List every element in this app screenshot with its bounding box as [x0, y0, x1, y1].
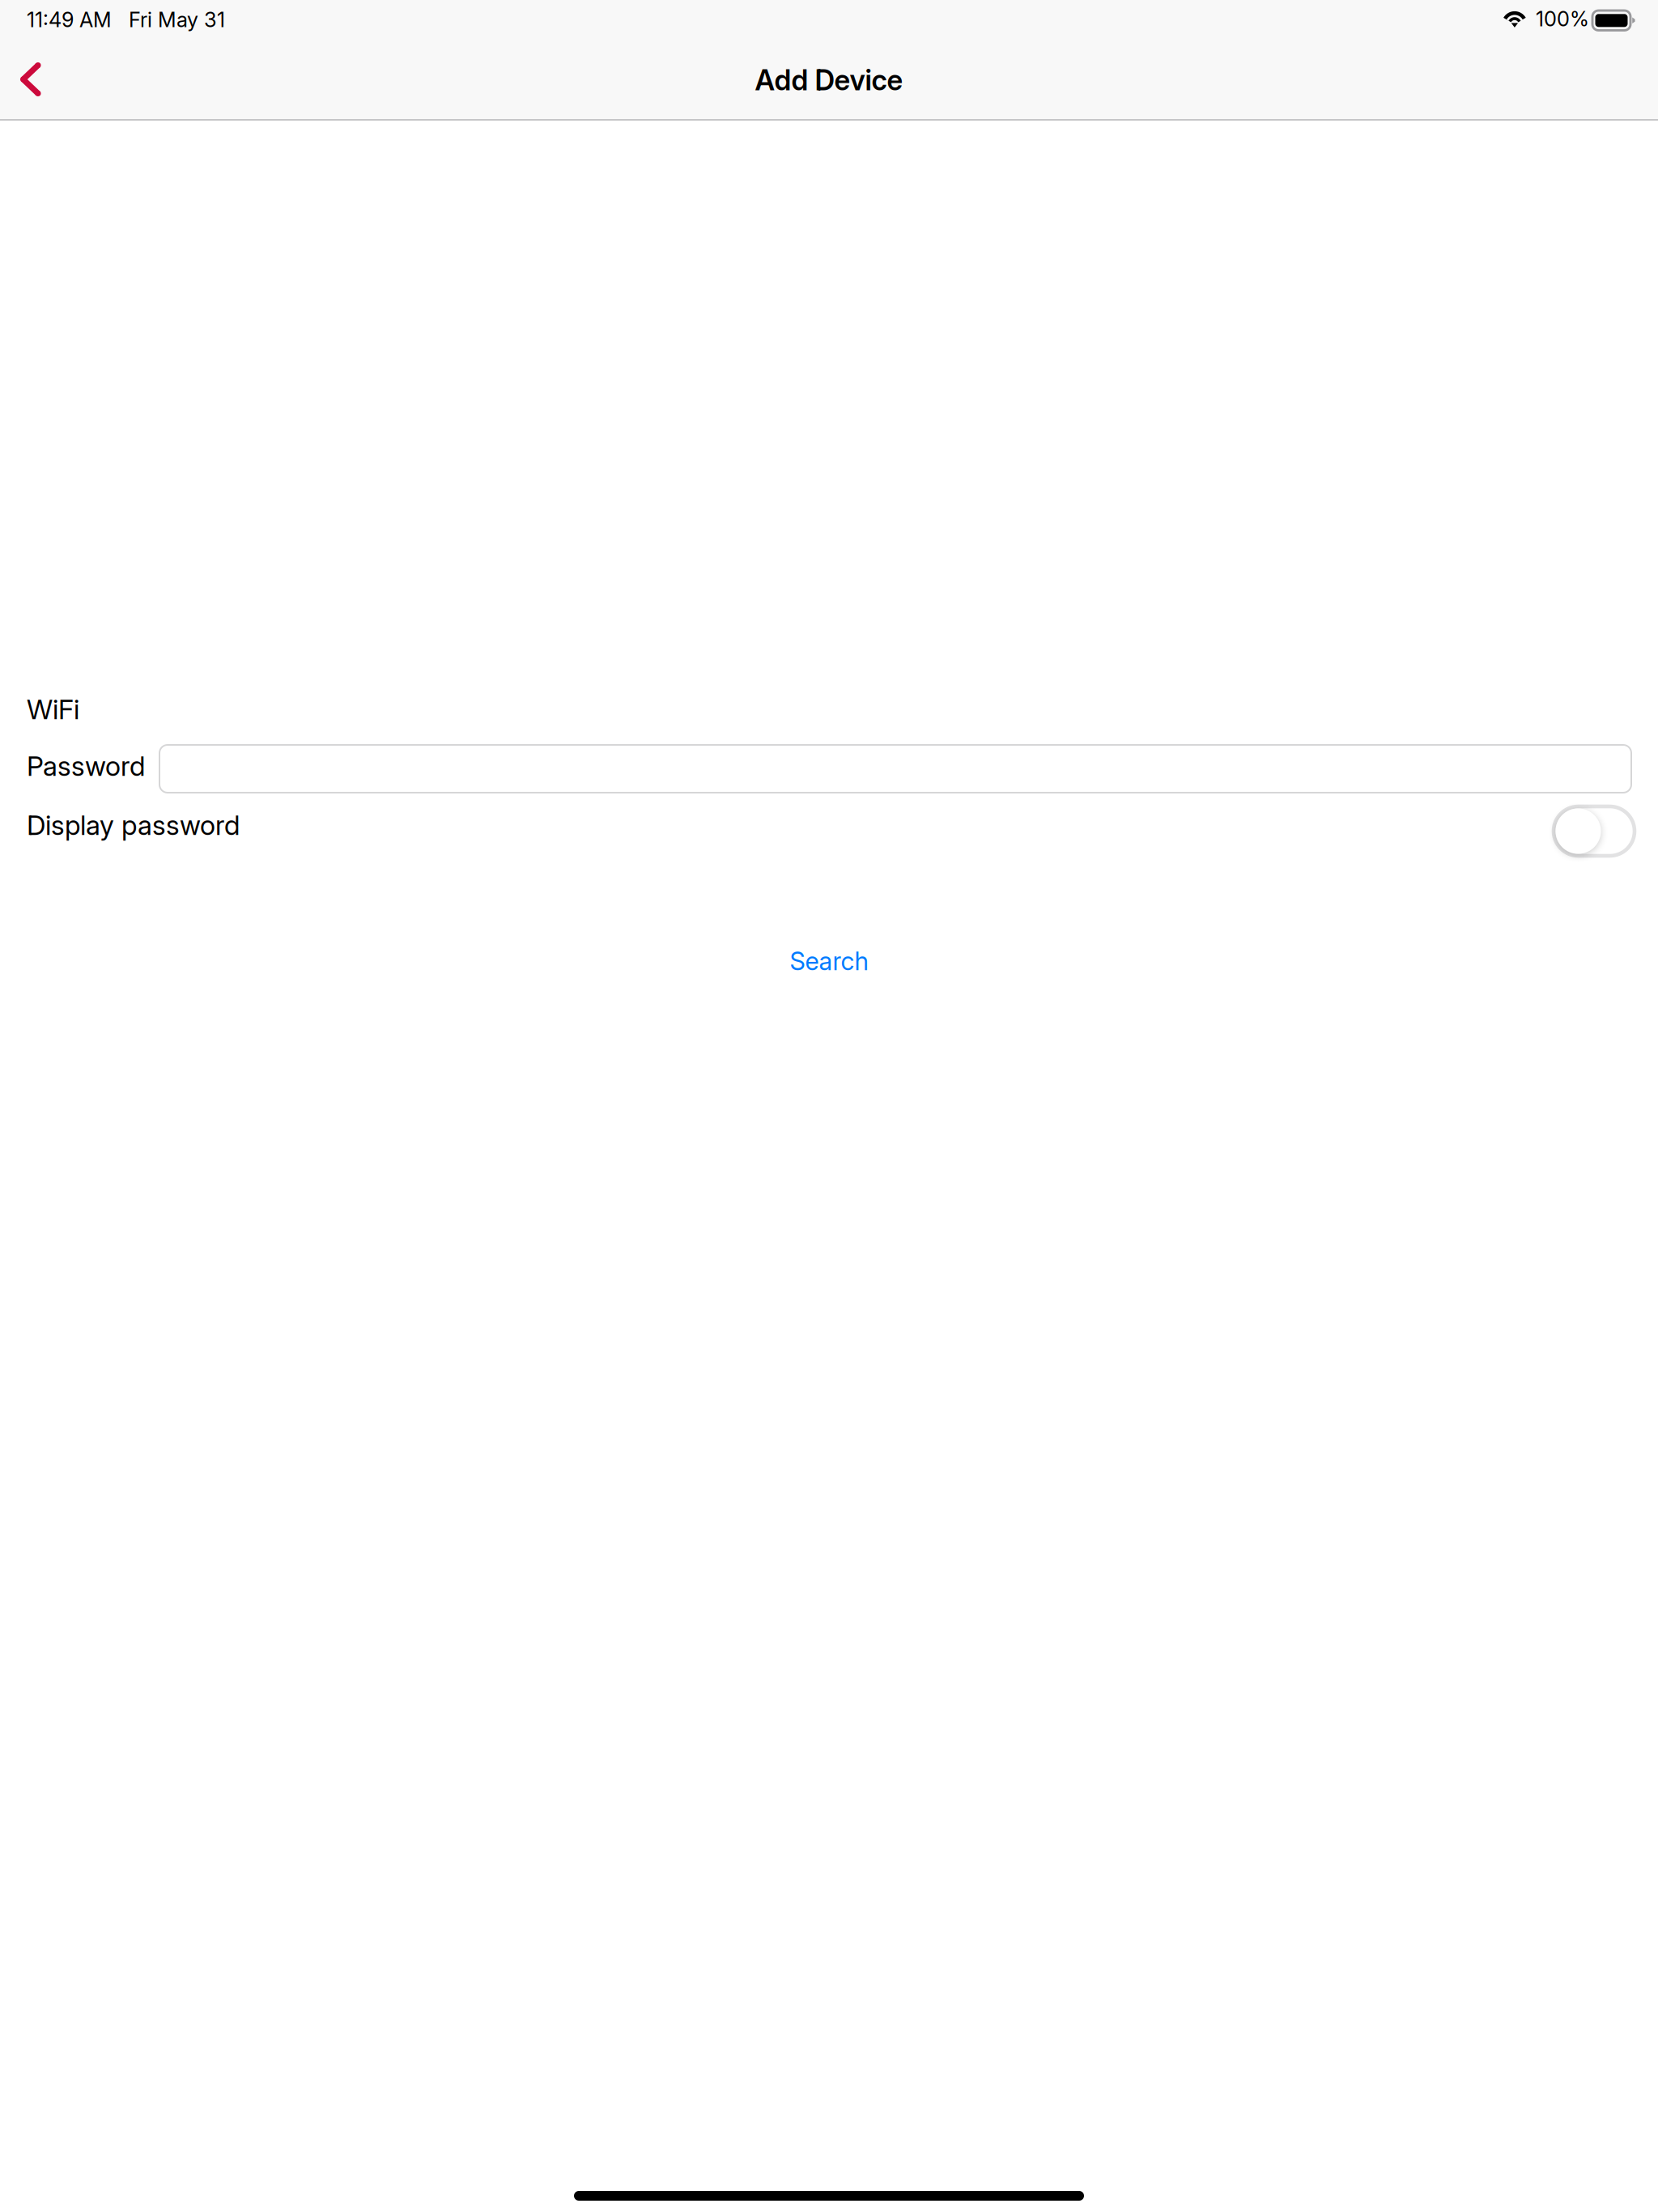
staticText: Search — [790, 946, 868, 976]
staticText: Fri May 31 — [129, 7, 225, 32]
staticText: 100% — [1536, 6, 1589, 31]
staticText: WiFi — [27, 693, 79, 726]
button[interactable]: Search — [764, 935, 894, 987]
button[interactable]: Back — [5, 47, 71, 113]
staticText: Display password — [27, 809, 240, 841]
staticText: Add Device — [755, 63, 903, 97]
staticText: 11:49 AM — [27, 7, 112, 32]
button[interactable]: Password — [159, 745, 1631, 793]
button[interactable]: Display password — [1554, 806, 1635, 856]
staticText: Password — [27, 750, 145, 782]
